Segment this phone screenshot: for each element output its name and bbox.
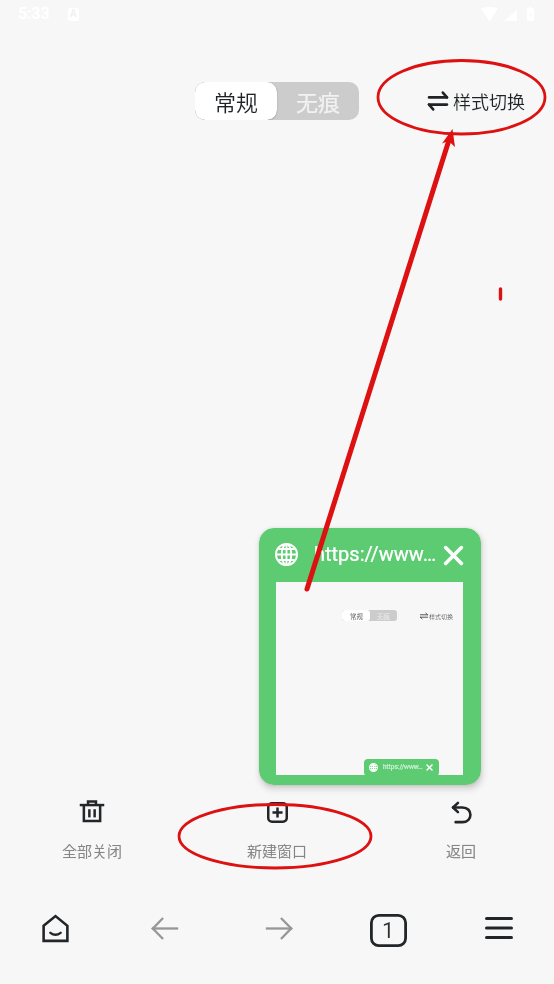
button[interactable]: 返回 <box>406 790 516 866</box>
staticText: https://www… <box>314 542 437 565</box>
button[interactable]: 常规 <box>195 82 277 120</box>
staticText: 常规 <box>350 611 363 620</box>
staticText: 返回 <box>406 840 516 862</box>
button[interactable]: Tabs, 1 open <box>361 903 415 957</box>
button[interactable]: 新建窗口 <box>222 790 332 866</box>
staticText: 1 <box>382 918 395 944</box>
staticText: 无痕 <box>296 85 341 117</box>
button[interactable]: Home <box>28 901 82 955</box>
staticText: 5:33 <box>18 4 50 23</box>
staticText: A <box>70 8 77 20</box>
button[interactable]: https://www… <box>259 528 481 785</box>
staticText: 样式切换 <box>453 88 525 114</box>
staticText: https://www… <box>383 763 423 771</box>
button[interactable]: 全部关闭 <box>37 790 147 866</box>
button[interactable]: 样式切换 <box>428 84 525 118</box>
staticText: 无痕 <box>377 611 390 620</box>
button[interactable]: Close tab <box>444 546 463 565</box>
button[interactable]: Back <box>138 901 192 955</box>
staticText: 样式切换 <box>429 612 454 621</box>
button[interactable]: Forward <box>251 901 305 955</box>
button[interactable]: Menu <box>472 901 526 955</box>
button[interactable]: 无痕 <box>277 82 359 120</box>
staticText: 常规 <box>214 85 259 117</box>
staticText: 新建窗口 <box>222 840 332 862</box>
staticText: 全部关闭 <box>37 840 147 862</box>
